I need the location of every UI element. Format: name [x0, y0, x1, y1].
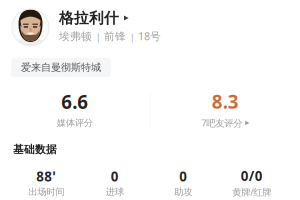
staticText: 0 [111, 167, 119, 185]
staticText: 进球 [106, 186, 124, 198]
staticText: 助攻 [174, 186, 192, 198]
staticText: 黄牌/红牌 [232, 186, 271, 198]
staticText: 0/0 [241, 167, 263, 185]
staticText: 7吧友评分 [201, 117, 242, 129]
staticText: 基础数据 [13, 143, 57, 156]
staticText: 爱来自曼彻斯特城 [21, 61, 101, 74]
staticText: 媒体评分 [57, 117, 93, 129]
staticText: 0 [179, 167, 187, 185]
staticText: 8.3 [212, 89, 239, 114]
button[interactable]: 球员头像 [12, 9, 49, 46]
staticText: 格拉利什 [59, 9, 119, 27]
button[interactable]: 格拉利什 [59, 9, 128, 27]
staticText: 埃弗顿 | 前锋 | 18号 [59, 29, 161, 43]
button[interactable]: 8.3 [150, 89, 300, 129]
staticText: 出场时间 [28, 186, 64, 198]
button[interactable]: 6.6 [0, 89, 149, 129]
staticText: 88' [36, 167, 56, 185]
staticText: 6.6 [61, 89, 88, 114]
